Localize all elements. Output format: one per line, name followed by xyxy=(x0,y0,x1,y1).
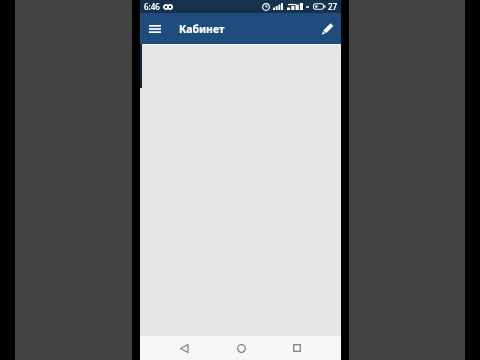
button[interactable]: Back xyxy=(172,336,196,360)
button[interactable]: Open navigation menu xyxy=(140,13,170,44)
staticText: Кабинет xyxy=(179,22,225,36)
button[interactable]: Edit xyxy=(313,13,341,44)
staticText: 27 xyxy=(328,1,338,12)
button[interactable]: Home xyxy=(229,336,253,360)
staticText: 6:46 xyxy=(144,1,160,12)
button[interactable]: Recent apps xyxy=(285,336,309,360)
